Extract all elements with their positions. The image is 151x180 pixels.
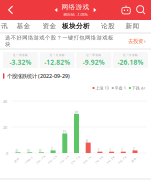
staticText: 40 (3, 99, 7, 104)
staticText: 基金 (16, 22, 30, 30)
staticText: 1 (97, 147, 99, 153)
staticText: 论股 (101, 22, 115, 30)
button[interactable]: 板块分析 (60, 20, 92, 32)
button[interactable]: AI assistant (119, 0, 133, 20)
staticText: 2 (132, 146, 134, 151)
button[interactable]: 资讯 (0, 20, 17, 32)
staticText: 8 (86, 138, 88, 143)
staticText: 1 (121, 147, 123, 153)
button[interactable]: 基金 (7, 20, 39, 32)
staticText: 去投资 › (128, 37, 146, 45)
staticText: 跌停 (14, 158, 20, 162)
staticText: 选不好网络游戏个股？一键打包网络游戏板块 (5, 34, 113, 47)
staticText: 近一年涨幅 (123, 53, 138, 57)
staticText: 0 (27, 148, 29, 153)
staticText: -9.92% (83, 58, 105, 67)
staticText: 网络游戏 (61, 3, 89, 11)
staticText: 近一周涨幅 (13, 53, 28, 57)
staticText (109, 85, 112, 91)
staticText: -7%以上 (23, 158, 34, 162)
staticText: 平盘 1 (114, 85, 126, 91)
staticText: 2 (51, 146, 53, 151)
staticText: 资讯 (0, 22, 8, 30)
staticText: 1 (109, 147, 111, 153)
staticText: 上涨 13 (95, 85, 109, 91)
staticText: 涨停 (131, 158, 137, 162)
staticText: -5%~-7% (34, 158, 46, 162)
button[interactable]: Next sector (93, 4, 97, 16)
staticText: 近一季涨幅 (86, 53, 101, 57)
staticText: -1%~-3% (58, 158, 70, 162)
staticText: 5%~7% (117, 158, 127, 162)
staticText: -12.82% (44, 58, 70, 67)
staticText: -3.32% (10, 58, 32, 67)
button[interactable]: 选不好网络游戏个股？一键打包网络游戏板块 (0, 34, 151, 48)
button[interactable]: 新闻 (116, 20, 148, 32)
staticText: 1%~3% (94, 158, 104, 162)
staticText: 0 (6, 151, 8, 156)
staticText: 资金 (42, 22, 56, 30)
staticText: 3%~5% (106, 158, 116, 162)
staticText: 20 (3, 125, 7, 130)
button[interactable]: Search (134, 0, 148, 20)
staticText: -3%~-5% (46, 158, 58, 162)
staticText: 30 (74, 110, 78, 115)
button[interactable]: Back (0, 0, 22, 20)
button[interactable]: 资金 (33, 20, 65, 32)
staticText: 个股涨跌统计 (2022-09-29) (7, 72, 70, 80)
staticText: 新闻 (125, 22, 139, 30)
staticText: 板块分析 (62, 22, 90, 30)
staticText: 0%~-1% (70, 158, 81, 162)
staticText: 近一月涨幅 (50, 53, 65, 57)
staticText: 869.66 -1.05% (63, 12, 87, 17)
staticText: 15 (62, 129, 66, 134)
staticText: 下跌 47 (131, 85, 145, 91)
button[interactable]: Previous sector (54, 4, 58, 16)
staticText: -26.18% (117, 58, 143, 67)
staticText: 0%~1% (82, 158, 92, 162)
staticText: 0 (15, 148, 17, 153)
staticText (126, 85, 129, 91)
button[interactable]: 论股 (92, 20, 124, 32)
staticText: 0 (39, 148, 41, 153)
